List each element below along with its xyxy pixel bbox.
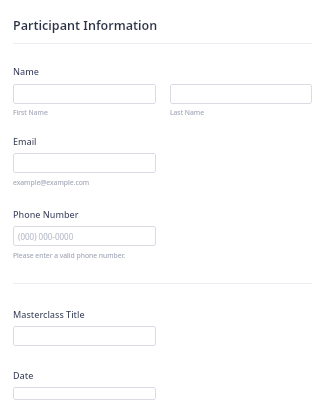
staticText: Date — [13, 369, 34, 381]
button[interactable]: Email input — [13, 153, 156, 173]
staticText: Email — [13, 135, 37, 147]
staticText: First Name — [13, 108, 48, 117]
staticText: Participant Information — [13, 17, 158, 34]
staticText: example@example.com — [13, 178, 90, 187]
button[interactable]: Masterclass Title input — [13, 326, 156, 346]
staticText: Please enter a valid phone number. — [13, 251, 126, 260]
button[interactable]: First Name input — [13, 84, 156, 104]
button[interactable]: Date input — [13, 387, 156, 400]
staticText: Masterclass Title — [13, 308, 85, 320]
button[interactable]: Phone Number input — [13, 226, 156, 246]
staticText: Name — [13, 65, 39, 77]
button[interactable]: Last Name input — [170, 84, 312, 104]
staticText: Phone Number — [13, 208, 79, 220]
staticText: (000) 000-0000 — [18, 231, 74, 242]
staticText: Last Name — [170, 108, 205, 117]
